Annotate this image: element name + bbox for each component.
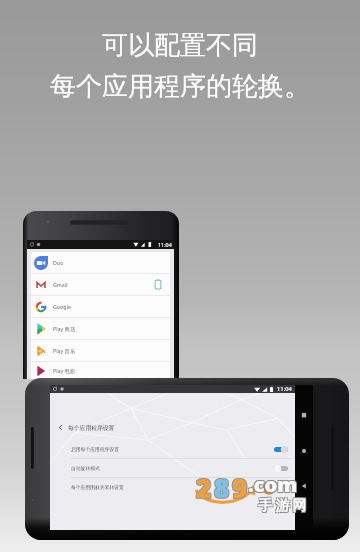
button[interactable]: Play 音乐: [31, 340, 170, 361]
staticText: Gmail: [53, 281, 68, 288]
staticText: .com: [247, 470, 297, 497]
staticText: 2: [197, 471, 213, 506]
staticText: 2: [195, 469, 211, 504]
other: Back: [57, 424, 64, 431]
staticText: 8: [215, 471, 231, 506]
staticText: 启用每个应用程序设置: [71, 446, 119, 452]
staticText: 9: [232, 470, 248, 505]
staticText: 手游网: [256, 496, 307, 514]
staticText: 2: [196, 470, 212, 505]
staticText: .com: [249, 472, 299, 499]
staticText: 2: [197, 469, 213, 504]
staticText: 9: [233, 471, 249, 506]
button[interactable]: 启用每个应用程序设置: [50, 440, 295, 458]
staticText: .com: [249, 470, 299, 497]
staticText: 9: [231, 469, 247, 504]
button[interactable]: Back: [50, 393, 295, 431]
button[interactable]: Toggle on: [274, 445, 288, 454]
staticText: Play 音乐: [53, 347, 76, 354]
button[interactable]: 每个应用图标关装转设置: [50, 478, 295, 496]
button[interactable]: Play 商店: [31, 318, 170, 339]
button[interactable]: Toggle off: [274, 464, 288, 473]
staticText: 每个应用程序设置: [68, 424, 115, 431]
staticText: 8: [214, 470, 230, 505]
staticText: Play 电影: [53, 367, 76, 374]
staticText: 9: [231, 471, 247, 506]
button[interactable]: Google: [31, 296, 170, 317]
staticText: 每个应用程序的轮换。: [50, 70, 310, 103]
staticText: 每个应用图标关装转设置: [71, 484, 124, 490]
staticText: 9: [233, 469, 249, 504]
button[interactable]: Gmail: [31, 274, 170, 295]
other: Tablet: [154, 279, 162, 290]
staticText: 2: [195, 471, 211, 506]
staticText: 11:04: [158, 241, 172, 248]
staticText: .com: [247, 472, 297, 499]
staticText: 8: [213, 469, 229, 504]
staticText: 手游网: [258, 498, 309, 516]
staticText: Play 商店: [53, 325, 76, 332]
staticText: Duo: [53, 259, 64, 266]
staticText: 可以配置不同: [102, 29, 258, 62]
staticText: 手游网: [257, 497, 308, 515]
staticText: 11:04: [277, 385, 292, 393]
staticText: 8: [215, 469, 231, 504]
button[interactable]: Duo: [31, 252, 170, 273]
staticText: Google: [53, 303, 71, 310]
button[interactable]: 自动旋转模式: [50, 459, 295, 477]
staticText: .com: [248, 471, 298, 498]
staticText: 手游网: [256, 498, 307, 516]
staticText: 8: [213, 471, 229, 506]
staticText: 手游网: [258, 496, 309, 514]
staticText: 自动旋转模式: [71, 465, 100, 471]
button[interactable]: Play 电影: [31, 362, 170, 379]
